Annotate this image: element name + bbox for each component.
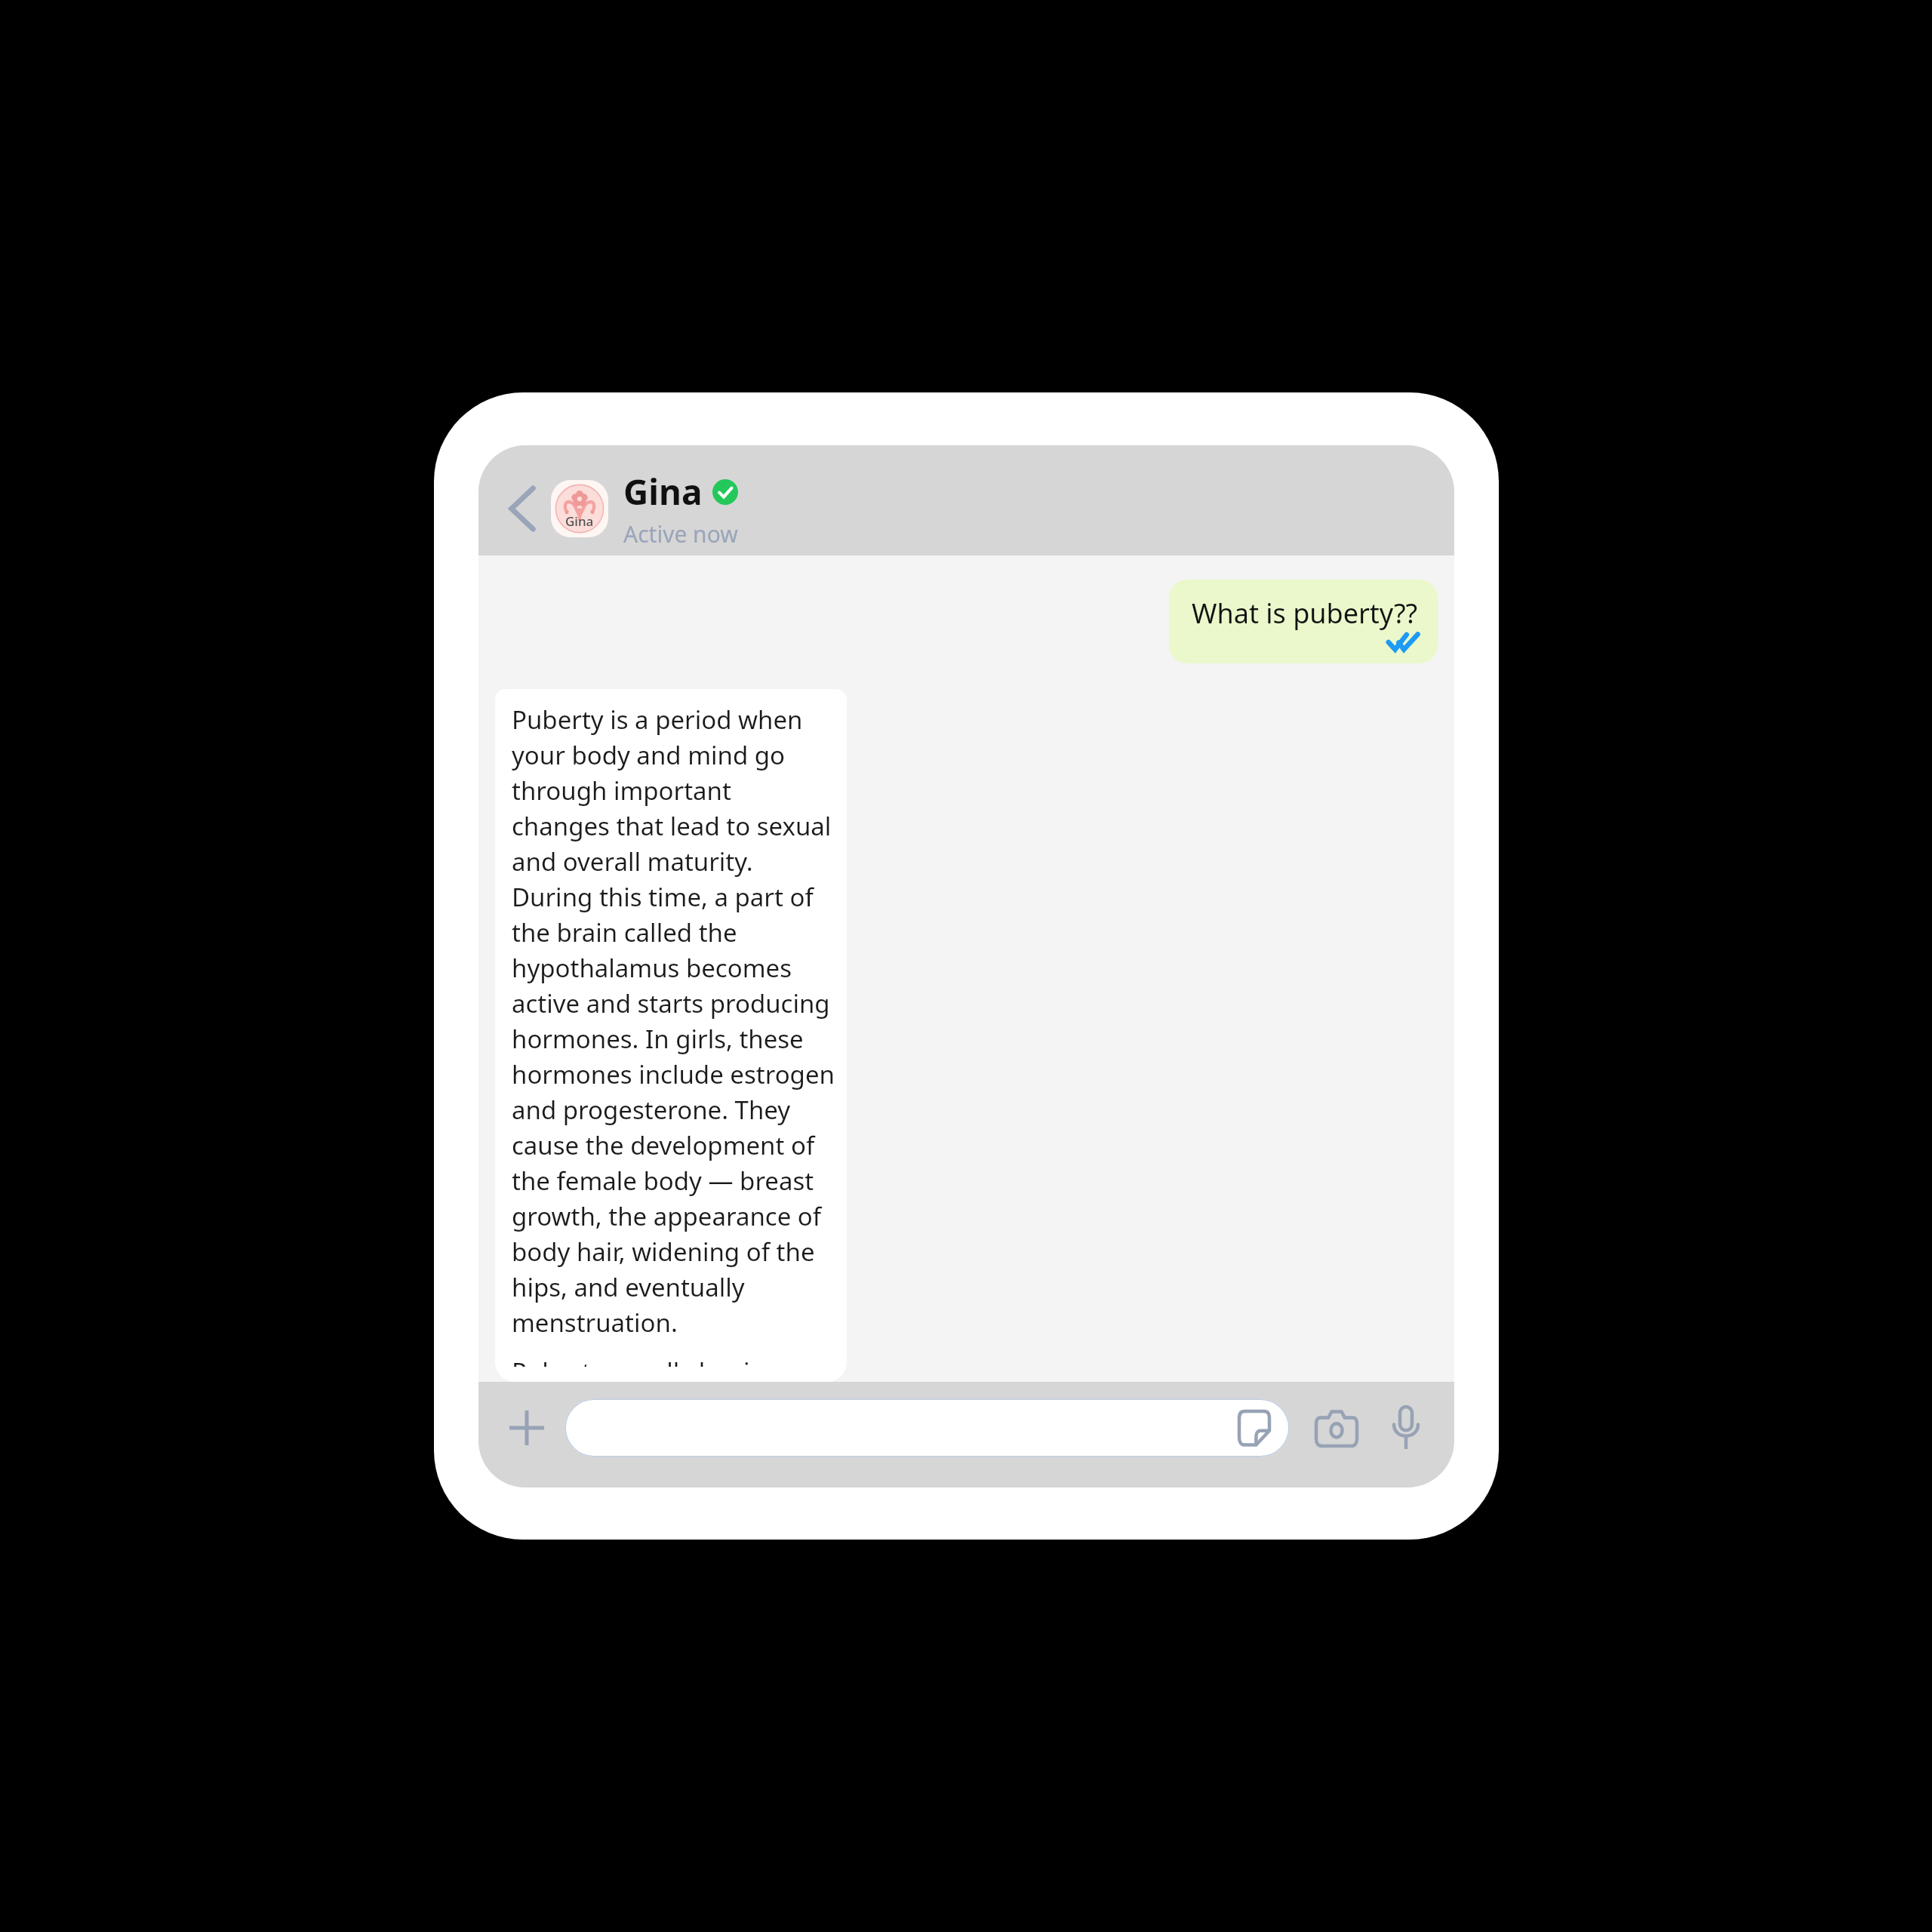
staticText: Gina bbox=[623, 468, 703, 515]
button[interactable]: Stickers bbox=[565, 1398, 1290, 1457]
button[interactable]: Stickers bbox=[1237, 1411, 1272, 1445]
button[interactable]: What is puberty?? bbox=[1169, 580, 1438, 663]
button[interactable]: Puberty is a period when your body and m… bbox=[495, 689, 847, 1382]
button[interactable]: Back bbox=[503, 485, 542, 532]
button[interactable]: Camera bbox=[1309, 1401, 1364, 1455]
button[interactable]: Gina profile photo bbox=[551, 480, 608, 537]
staticText: Puberty usually begins between the ages … bbox=[512, 1355, 835, 1367]
button[interactable]: Gina bbox=[623, 468, 738, 549]
staticText: Active now bbox=[623, 518, 738, 549]
staticText: What is puberty?? bbox=[1192, 595, 1418, 632]
staticText: Gina bbox=[565, 512, 594, 530]
button[interactable]: Attach bbox=[500, 1401, 554, 1455]
button[interactable]: Voice message bbox=[1379, 1401, 1433, 1455]
staticText: Puberty is a period when your body and m… bbox=[512, 703, 835, 1340]
